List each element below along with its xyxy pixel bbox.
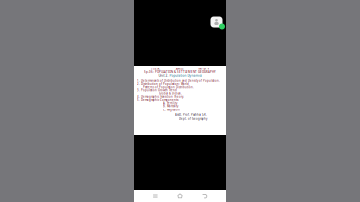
staticText: 1. Determinants of Distribution and Dens… [137, 79, 220, 82]
button[interactable]: Back [192, 190, 217, 202]
staticText: Unit 2. [159, 73, 169, 78]
staticText: C. Migration [163, 108, 180, 111]
button[interactable]: Home [168, 190, 192, 202]
staticText: B. Mortality [163, 104, 178, 108]
staticText: Asstt. Prof. Pachhai S.R. [175, 113, 207, 116]
staticText: T.Y.B.A. SEM-III PAPER V [150, 67, 209, 70]
staticText: 4. Demographic Transition Theory. [137, 95, 184, 98]
staticText: Sp-06: POPULATION & SETTLEMENT GEOGRAPHY [144, 70, 216, 74]
staticText: 3. Population Growth Trend [137, 88, 177, 92]
staticText: Patterns of Population Distribution. [143, 85, 194, 89]
staticText: 5. Demographic Components: [137, 98, 179, 102]
staticText: Dept. of Geography [179, 117, 207, 120]
staticText: 2. Distribution of Population: World, [137, 82, 190, 86]
staticText: Global & Indian. [159, 92, 182, 95]
staticText: Population Dynamics [169, 73, 201, 78]
button[interactable]: Recent apps [143, 190, 168, 202]
staticText: A. Fertility [163, 101, 177, 105]
